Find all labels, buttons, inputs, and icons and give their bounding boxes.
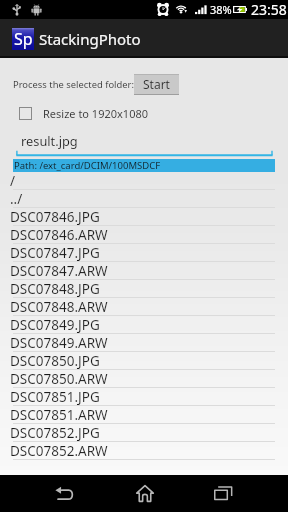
staticText: Process the selected folder:: [13, 78, 134, 91]
staticText: 23:58: [251, 0, 287, 18]
staticText: DSC07848.JPG: [10, 280, 100, 297]
button[interactable]: DSC07846.JPG: [0, 208, 288, 226]
staticText: Sp: [14, 28, 33, 49]
button[interactable]: ../: [0, 190, 288, 208]
button[interactable]: DSC07848.ARW: [0, 298, 288, 316]
button[interactable]: DSC07850.ARW: [0, 370, 288, 388]
button[interactable]: DSC07852.ARW: [0, 442, 288, 460]
button[interactable]: Resize to 1920x1080: [0, 105, 288, 121]
staticText: DSC07851.ARW: [10, 406, 108, 423]
button[interactable]: DSC07849.ARW: [0, 334, 288, 352]
staticText: /: [10, 172, 16, 189]
staticText: 38%: [210, 2, 232, 17]
staticText: result.jpg: [21, 132, 78, 149]
button[interactable]: DSC07851.JPG: [0, 388, 288, 406]
button[interactable]: Home: [121, 475, 168, 512]
button[interactable]: DSC07847.ARW: [0, 262, 288, 280]
button[interactable]: DSC07850.JPG: [0, 352, 288, 370]
staticText: DSC07847.ARW: [10, 262, 108, 279]
staticText: DSC07849.JPG: [10, 316, 100, 333]
button[interactable]: DSC07852.JPG: [0, 424, 288, 442]
staticText: DSC07848.ARW: [10, 298, 108, 315]
button[interactable]: /: [0, 172, 288, 190]
button[interactable]: Start: [134, 74, 179, 95]
staticText: DSC07846.ARW: [10, 226, 108, 243]
staticText: DSC07851.JPG: [10, 388, 100, 405]
staticText: DSC07850.ARW: [10, 370, 108, 387]
button[interactable]: DSC07848.JPG: [0, 280, 288, 298]
button[interactable]: Recent apps: [200, 475, 247, 512]
staticText: Start: [143, 76, 170, 92]
staticText: Path: /ext_card/DCIM/100MSDCF: [14, 159, 161, 172]
button[interactable]: DSC07851.ARW: [0, 406, 288, 424]
staticText: DSC07852.JPG: [10, 424, 100, 441]
button[interactable]: DSC07849.JPG: [0, 316, 288, 334]
staticText: DSC07847.JPG: [10, 244, 100, 261]
staticText: DSC07850.JPG: [10, 352, 100, 369]
button[interactable]: DSC07846.ARW: [0, 226, 288, 244]
button[interactable]: DSC07847.JPG: [0, 244, 288, 262]
staticText: Resize to 1920x1080: [43, 106, 149, 121]
button[interactable]: Path: /ext_card/DCIM/100MSDCF: [13, 159, 275, 172]
staticText: ../: [10, 190, 23, 207]
staticText: DSC07846.JPG: [10, 208, 100, 225]
button[interactable]: Back: [41, 475, 88, 512]
staticText: StackingPhoto: [39, 29, 141, 49]
staticText: DSC07849.ARW: [10, 334, 108, 351]
staticText: DSC07852.ARW: [10, 442, 108, 459]
